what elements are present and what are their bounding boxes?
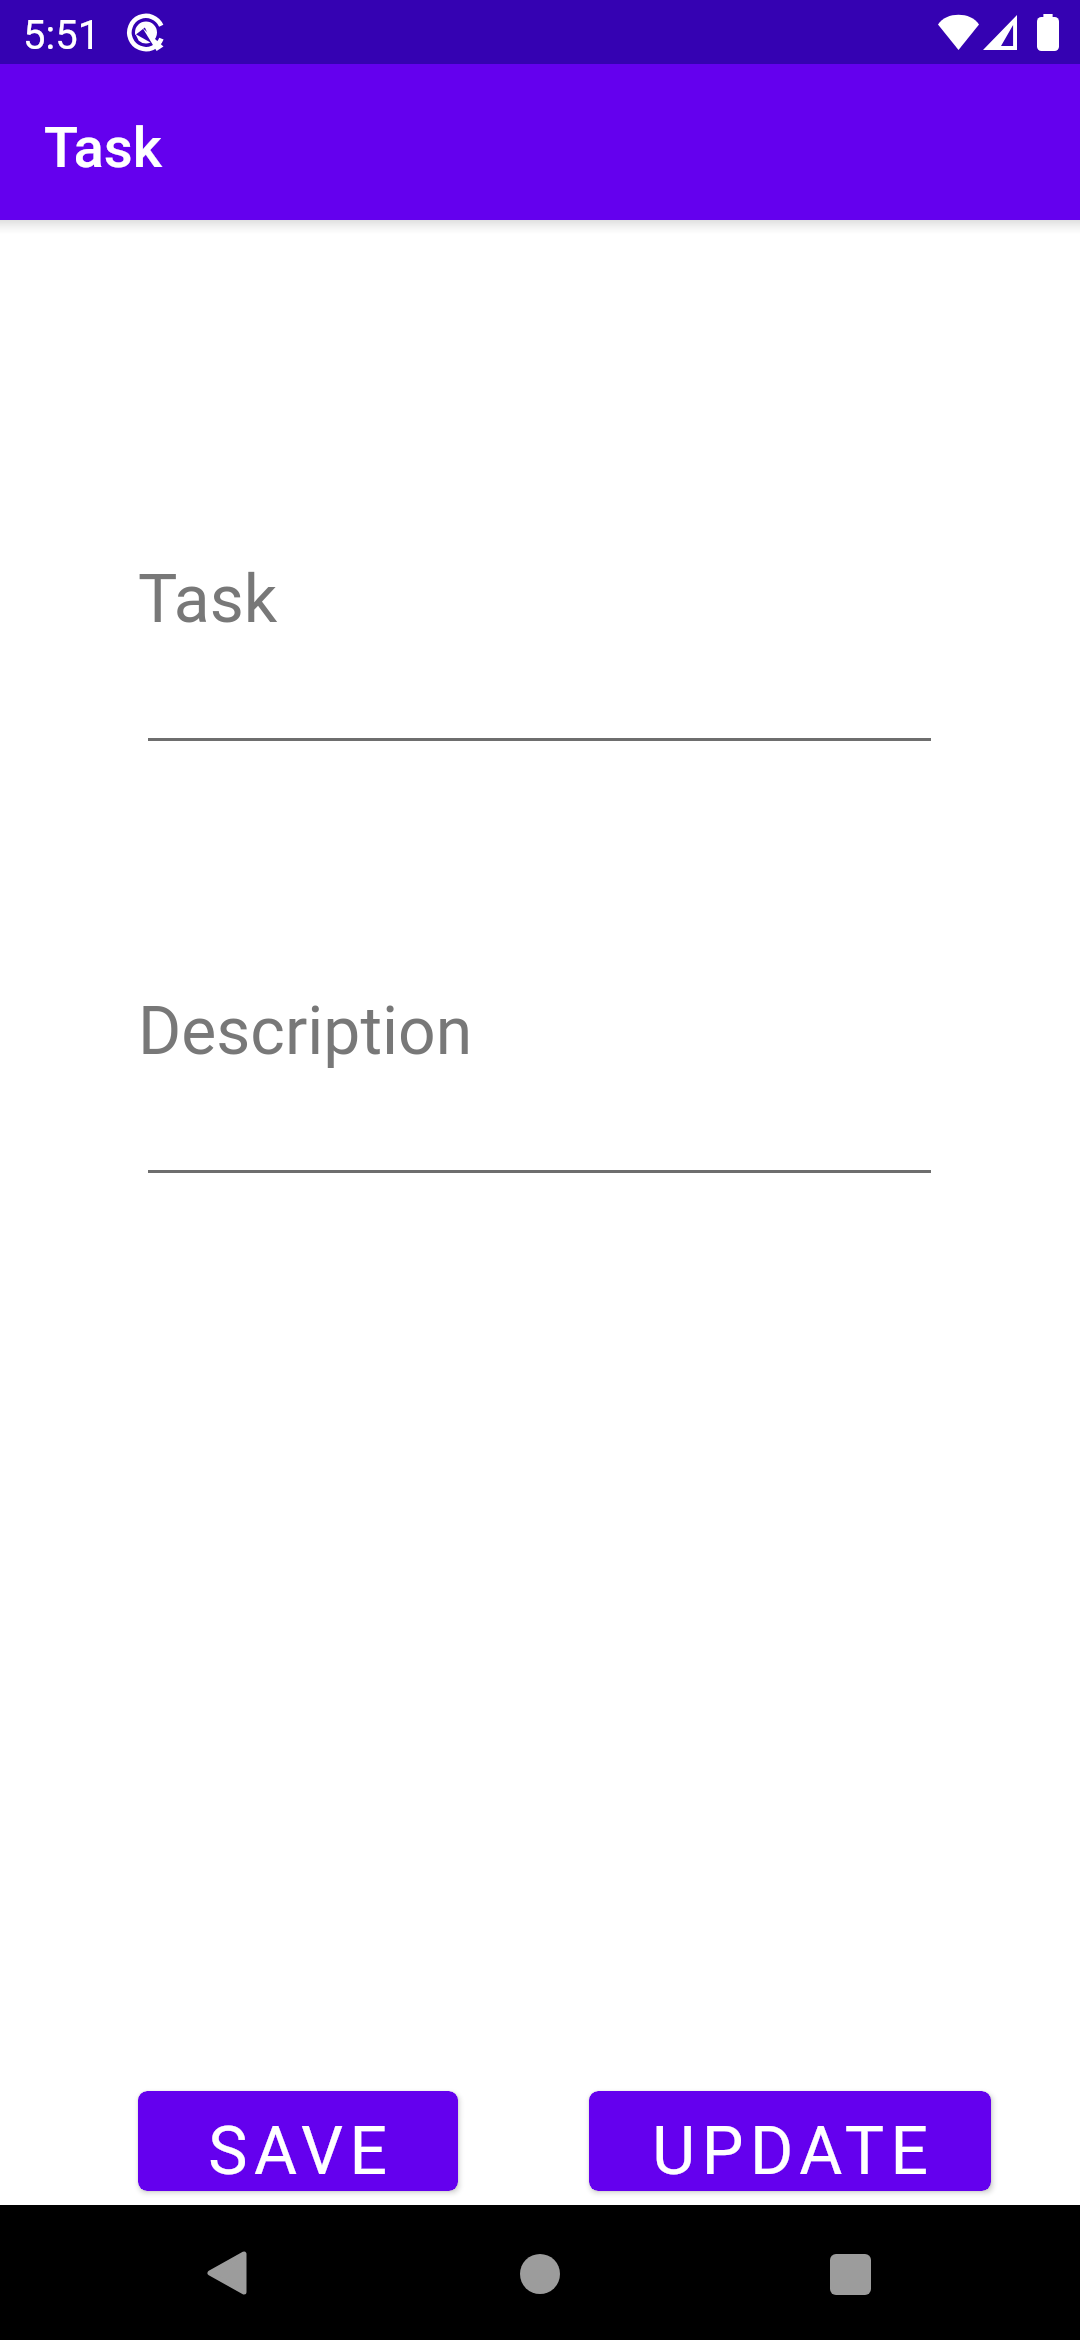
button[interactable]: Back (196, 2245, 256, 2301)
staticText: Description (138, 993, 473, 1070)
button[interactable]: SAVE (138, 2091, 458, 2191)
button[interactable]: Recents (830, 2254, 871, 2295)
staticText: Task (138, 561, 278, 638)
button[interactable]: Task (138, 561, 931, 741)
button[interactable]: Home (520, 2254, 560, 2294)
button[interactable]: Description (138, 993, 931, 1173)
staticText: 5:51 (23, 12, 101, 59)
staticText: SAVE (208, 2113, 394, 2190)
staticText: Task (44, 115, 162, 181)
button[interactable]: UPDATE (589, 2091, 991, 2191)
staticText: UPDATE (652, 2113, 935, 2190)
